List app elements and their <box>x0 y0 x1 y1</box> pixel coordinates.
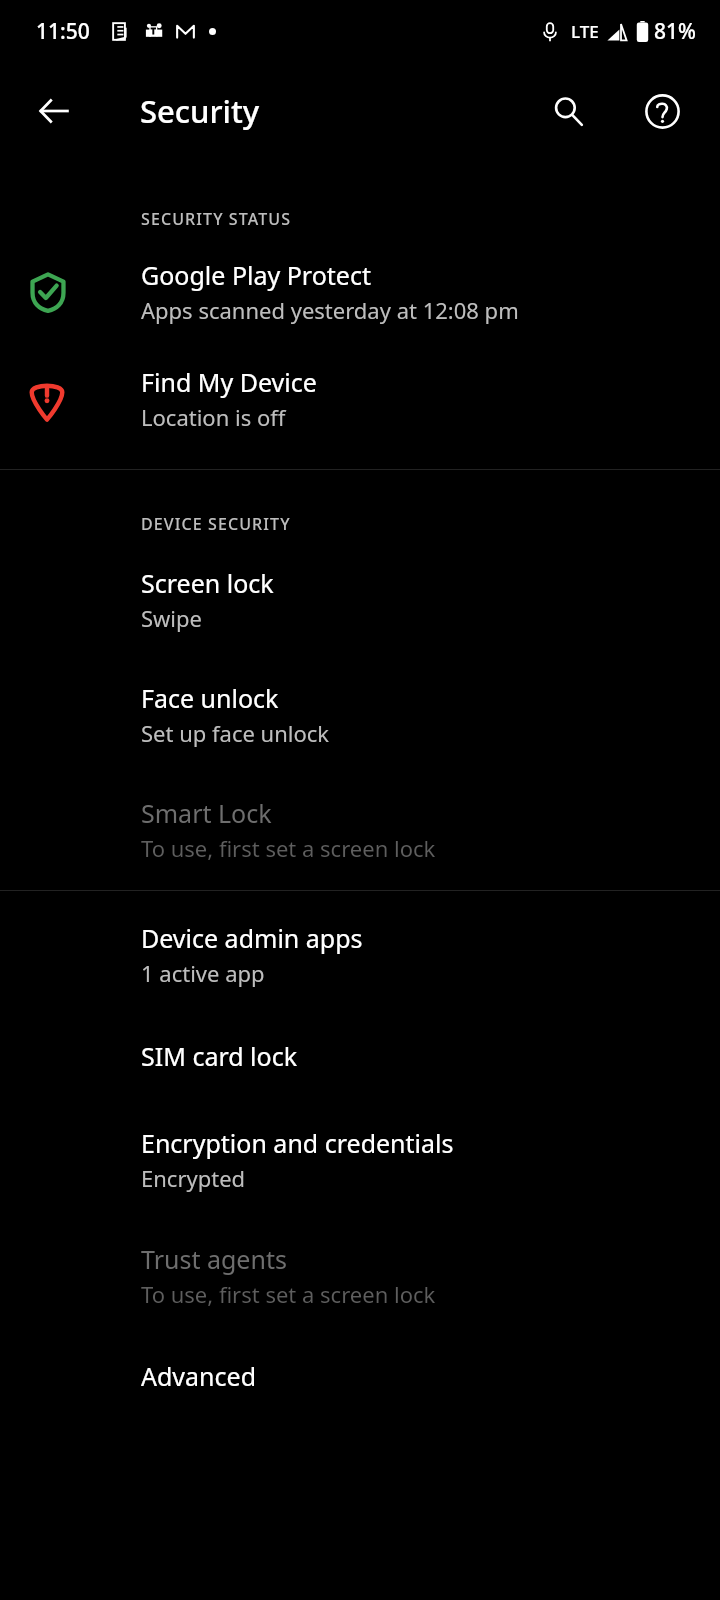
staticText: 11:50 <box>36 17 90 46</box>
button[interactable]: Trust agents <box>0 1238 720 1313</box>
button[interactable]: Back <box>18 75 90 147</box>
staticText: LTE <box>571 20 599 43</box>
staticText: Set up face unlock <box>141 718 330 748</box>
staticText: SIM card lock <box>141 1039 298 1073</box>
button[interactable]: Help <box>626 75 698 147</box>
staticText: Screen lock <box>141 566 274 600</box>
button[interactable]: Smart Lock <box>0 792 720 867</box>
staticText: Face unlock <box>141 681 279 715</box>
button[interactable]: Screen lock <box>0 562 720 637</box>
button[interactable]: Search <box>532 75 604 147</box>
button[interactable]: Device admin apps <box>0 917 720 992</box>
button[interactable]: Find My Device <box>0 359 720 438</box>
other: Find My Device <box>30 378 141 420</box>
button[interactable]: Encryption and credentials <box>0 1122 720 1197</box>
staticText: SECURITY STATUS <box>141 208 292 230</box>
staticText: DEVICE SECURITY <box>141 513 291 535</box>
staticText: Advanced <box>141 1359 257 1393</box>
staticText: Location is off <box>141 402 286 432</box>
button[interactable]: SIM card lock <box>0 1035 720 1077</box>
staticText: Smart Lock <box>141 796 272 830</box>
staticText: Trust agents <box>141 1242 287 1276</box>
staticText: Encryption and credentials <box>141 1126 454 1160</box>
staticText: Find My Device <box>141 365 317 399</box>
staticText: 81% <box>654 17 696 46</box>
button[interactable]: Google Play Protect <box>0 252 720 331</box>
staticText: Google Play Protect <box>141 258 371 292</box>
button[interactable]: Advanced <box>0 1355 720 1397</box>
staticText: Device admin apps <box>141 921 363 955</box>
staticText: Security <box>140 90 260 132</box>
staticText: Swipe <box>141 603 202 633</box>
staticText: 1 active app <box>141 958 265 988</box>
staticText: Apps scanned yesterday at 12:08 pm <box>141 295 519 325</box>
staticText: Encrypted <box>141 1163 246 1193</box>
button[interactable]: Face unlock <box>0 677 720 752</box>
other: Google Play Protect <box>30 272 141 312</box>
staticText: To use, first set a screen lock <box>141 833 436 863</box>
staticText: To use, first set a screen lock <box>141 1279 436 1309</box>
